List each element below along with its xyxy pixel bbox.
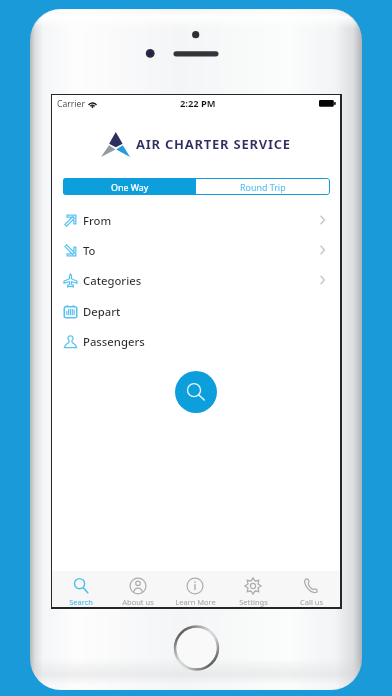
button[interactable]: One Way	[63, 178, 196, 195]
staticText: 2:22 PM	[180, 97, 216, 110]
button[interactable]: Categories	[52, 265, 340, 295]
staticText: Round Trip	[240, 181, 286, 193]
button[interactable]: About us	[109, 571, 166, 607]
button[interactable]: Learn More	[166, 571, 224, 607]
staticText: Carrier	[57, 98, 85, 110]
button[interactable]: Search	[175, 371, 217, 413]
button[interactable]: Settings	[224, 571, 282, 607]
button[interactable]: Call us	[282, 571, 340, 607]
staticText: From	[83, 213, 112, 228]
staticText: Search	[69, 597, 93, 607]
staticText: Learn More	[175, 597, 216, 607]
staticText: Depart	[83, 304, 121, 319]
button[interactable]: Depart	[52, 296, 340, 326]
staticText: Categories	[83, 273, 142, 288]
button[interactable]: Search	[52, 571, 109, 607]
button[interactable]: From	[52, 205, 340, 235]
staticText: One Way	[111, 181, 149, 193]
button[interactable]: To	[52, 235, 340, 265]
staticText: Call us	[300, 597, 323, 607]
staticText: Settings	[239, 597, 268, 607]
button[interactable]: Passengers	[52, 326, 340, 356]
staticText: AIR CHARTER SERVICE	[136, 135, 291, 153]
staticText: About us	[122, 597, 154, 607]
staticText: Passengers	[83, 334, 145, 349]
button[interactable]: Round Trip	[196, 178, 330, 195]
staticText: To	[83, 243, 96, 258]
